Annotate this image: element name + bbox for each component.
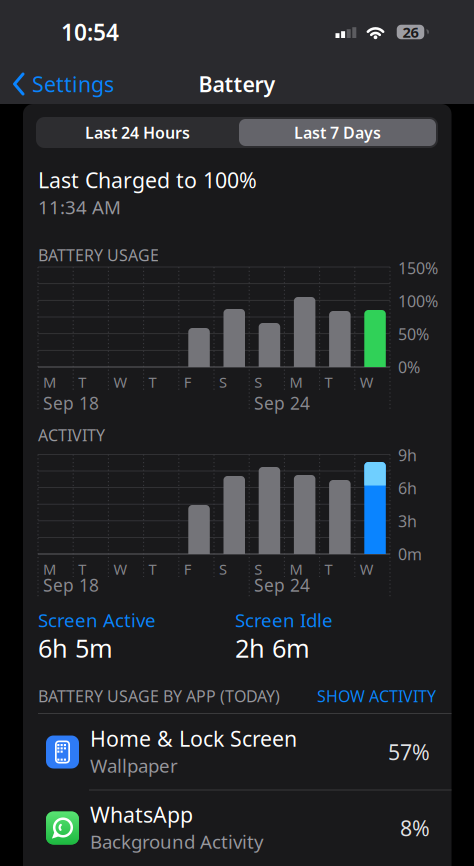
staticText: BATTERY USAGE bbox=[38, 244, 159, 266]
button[interactable]: SHOW ACTIVITY bbox=[296, 685, 436, 707]
staticText: T bbox=[78, 559, 86, 579]
staticText: Sep 24 bbox=[254, 573, 310, 596]
staticText: ACTIVITY bbox=[38, 424, 105, 446]
staticText: T bbox=[325, 372, 333, 392]
staticText: S bbox=[219, 372, 227, 392]
staticText: Last 7 Days bbox=[294, 122, 381, 143]
staticText: 11:34 AM bbox=[38, 195, 121, 219]
staticText: 0m bbox=[398, 543, 422, 565]
staticText: 57% bbox=[388, 738, 430, 766]
staticText: 100% bbox=[398, 290, 438, 312]
staticText: M bbox=[43, 559, 56, 579]
staticText: T bbox=[78, 372, 86, 392]
staticText: 50% bbox=[398, 323, 429, 345]
staticText: F bbox=[184, 372, 192, 392]
staticText: 3h bbox=[398, 510, 417, 532]
button[interactable]: Home & Lock Screen bbox=[23, 714, 451, 790]
staticText: 8% bbox=[400, 814, 430, 842]
staticText: S bbox=[254, 559, 262, 579]
staticText: W bbox=[113, 372, 127, 392]
button[interactable] bbox=[239, 119, 436, 146]
staticText: Screen Active bbox=[38, 608, 156, 632]
staticText: 26 bbox=[402, 22, 418, 42]
staticText: Wallpaper bbox=[90, 753, 178, 778]
staticText: S bbox=[219, 559, 227, 579]
staticText: Last Charged to 100% bbox=[38, 166, 257, 194]
staticText: Screen Idle bbox=[235, 608, 333, 632]
staticText: F bbox=[184, 559, 192, 579]
staticText: Last 24 Hours bbox=[85, 122, 190, 143]
staticText: W bbox=[360, 372, 374, 392]
staticText: Battery bbox=[198, 70, 275, 98]
staticText: T bbox=[149, 372, 157, 392]
staticText: SHOW ACTIVITY bbox=[317, 685, 436, 707]
staticText: T bbox=[149, 559, 157, 579]
staticText: 0% bbox=[398, 356, 420, 378]
staticText: Settings bbox=[32, 70, 114, 98]
staticText: 6h bbox=[398, 477, 417, 499]
staticText: Sep 24 bbox=[254, 391, 310, 414]
staticText: Home & Lock Screen bbox=[90, 724, 297, 753]
staticText: 6h 5m bbox=[38, 631, 113, 665]
staticText: M bbox=[289, 559, 302, 579]
staticText: T bbox=[325, 559, 333, 579]
staticText: S bbox=[254, 372, 262, 392]
staticText: BATTERY USAGE BY APP (TODAY) bbox=[38, 685, 280, 707]
staticText: M bbox=[289, 372, 302, 392]
button[interactable] bbox=[38, 117, 237, 148]
staticText: Sep 18 bbox=[43, 391, 99, 414]
staticText: M bbox=[43, 372, 56, 392]
staticText: 9h bbox=[398, 444, 417, 466]
button[interactable]: Settings bbox=[12, 72, 122, 96]
staticText: 10:54 bbox=[61, 17, 119, 47]
staticText: Sep 18 bbox=[43, 573, 99, 596]
staticText: W bbox=[360, 559, 374, 579]
staticText: W bbox=[113, 559, 127, 579]
staticText: Background Activity bbox=[90, 829, 264, 854]
staticText: 150% bbox=[398, 257, 438, 279]
staticText: WhatsApp bbox=[90, 800, 193, 829]
button[interactable]: WhatsApp bbox=[23, 790, 451, 866]
staticText: 2h 6m bbox=[235, 631, 310, 665]
